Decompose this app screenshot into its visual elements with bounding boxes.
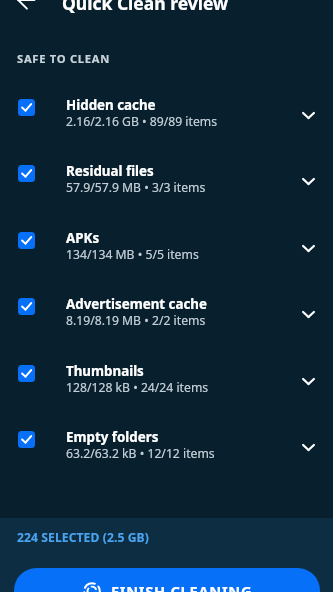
- button[interactable]: FINISH CLEANING: [14, 568, 320, 592]
- button[interactable]: Expand: [294, 101, 322, 129]
- button[interactable]: Expand: [294, 367, 322, 395]
- staticText: FINISH CLEANING: [111, 581, 253, 592]
- button[interactable]: Expand: [294, 234, 322, 262]
- staticText: 63.2/63.2 kB • 12/12 items: [66, 445, 215, 462]
- staticText: 57.9/57.9 MB • 3/3 items: [66, 179, 206, 196]
- staticText: SAFE TO CLEAN: [17, 51, 111, 66]
- button[interactable]: APKs: [0, 215, 333, 282]
- staticText: APKs: [66, 229, 100, 247]
- staticText: Residual files: [66, 162, 154, 180]
- staticText: 8.19/8.19 MB • 2/2 items: [66, 312, 206, 329]
- button[interactable]: Thumbnails: [0, 348, 333, 415]
- staticText: Advertisement cache: [66, 295, 207, 313]
- staticText: Hidden cache: [66, 96, 156, 114]
- staticText: 224 SELECTED (2.5 GB): [17, 529, 149, 545]
- button[interactable]: Advertisement cache: [0, 281, 333, 348]
- button[interactable]: Hidden cache: [0, 82, 333, 149]
- staticText: Empty folders: [66, 428, 159, 446]
- button[interactable]: Expand: [294, 167, 322, 195]
- staticText: 128/128 kB • 24/24 items: [66, 379, 209, 396]
- staticText: 134/134 MB • 5/5 items: [66, 246, 199, 263]
- button[interactable]: Back: [8, 0, 44, 18]
- button[interactable]: Expand: [294, 433, 322, 461]
- staticText: Thumbnails: [66, 362, 144, 380]
- staticText: Quick Clean review: [62, 0, 229, 15]
- button[interactable]: Empty folders: [0, 414, 333, 481]
- button[interactable]: Residual files: [0, 148, 333, 215]
- staticText: 2.16/2.16 GB • 89/89 items: [66, 113, 218, 130]
- button[interactable]: Expand: [294, 300, 322, 328]
